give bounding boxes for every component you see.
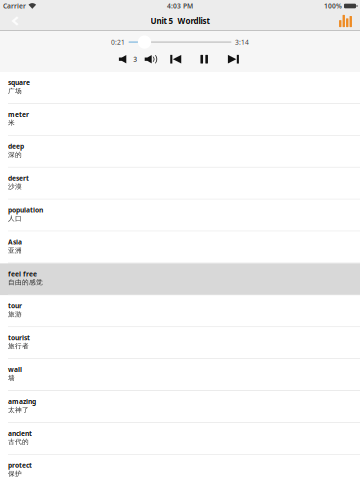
staticText: deep (8, 142, 24, 151)
staticText: 旅游 (8, 310, 22, 318)
staticText: ancient (8, 429, 32, 438)
staticText: Carrier (3, 2, 26, 10)
staticText: 100% (324, 2, 342, 10)
button[interactable]: protect (0, 455, 360, 480)
staticText: 古代的 (8, 438, 29, 446)
staticText: 旅行者 (8, 342, 29, 350)
staticText: Unit 5 Wordlist (150, 16, 209, 26)
button[interactable]: Back (0, 12, 30, 30)
button[interactable]: amazing (0, 391, 360, 423)
staticText: 0:21 (111, 38, 125, 47)
staticText: 深的 (8, 151, 22, 159)
staticText: 亚洲 (8, 246, 22, 255)
button[interactable]: tourist (0, 327, 360, 359)
staticText: 3 (133, 55, 137, 64)
staticText: 3:14 (235, 38, 249, 47)
button[interactable]: Volume up (142, 55, 162, 64)
button[interactable]: wall (0, 359, 360, 391)
staticText: 米 (8, 119, 15, 127)
staticText: meter (8, 110, 29, 119)
button[interactable]: feel free (0, 263, 360, 295)
staticText: 广场 (8, 87, 22, 95)
staticText: wall (8, 365, 22, 374)
staticText: 保护 (8, 470, 22, 478)
staticText: Asia (8, 237, 22, 246)
staticText: desert (8, 174, 29, 183)
staticText: 人口 (8, 214, 22, 223)
button[interactable]: deep (0, 136, 360, 168)
staticText: 太神了 (8, 406, 29, 414)
staticText: 4:03 PM (167, 2, 193, 10)
button[interactable]: Statistics (331, 12, 360, 30)
staticText: amazing (8, 397, 36, 406)
button[interactable]: tour (0, 295, 360, 327)
button[interactable]: meter (0, 104, 360, 136)
button[interactable]: Next track (219, 55, 248, 64)
button[interactable]: Asia (0, 231, 360, 263)
button[interactable]: desert (0, 168, 360, 200)
staticText: tourist (8, 333, 30, 342)
button[interactable]: Volume down (116, 55, 129, 64)
staticText: 墙 (8, 374, 15, 382)
button[interactable]: ancient (0, 423, 360, 455)
button[interactable]: square (0, 72, 360, 104)
staticText: square (8, 78, 30, 87)
button[interactable]: Pause (190, 55, 219, 64)
staticText: 自由的感觉 (8, 278, 43, 286)
staticText: population (8, 206, 43, 214)
staticText: protect (8, 461, 32, 470)
staticText: feel free (8, 269, 37, 278)
button[interactable]: Previous track (162, 55, 190, 64)
staticText: 沙漠 (8, 183, 22, 191)
staticText: tour (8, 301, 22, 310)
button[interactable]: population (0, 200, 360, 231)
